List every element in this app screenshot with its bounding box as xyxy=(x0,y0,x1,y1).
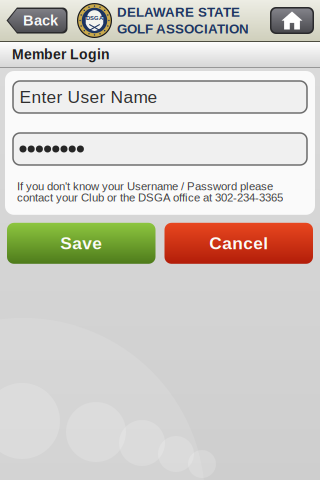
staticText: Cancel xyxy=(209,234,268,253)
staticText: Member Login xyxy=(12,47,110,62)
staticText: DSGA xyxy=(86,15,103,21)
staticText: contact your Club or the DSGA office at … xyxy=(17,191,283,204)
staticText: If you don't know your Username / Passwo… xyxy=(17,180,273,193)
staticText: Save xyxy=(60,234,102,253)
staticText: Back xyxy=(23,12,58,29)
button[interactable]: Cancel xyxy=(164,223,313,264)
staticText: DELAWARE STATE xyxy=(117,5,240,19)
staticText: Enter User Name xyxy=(19,87,157,107)
button[interactable]: Back xyxy=(6,7,68,34)
button[interactable]: Home xyxy=(270,7,314,34)
button[interactable]: Save xyxy=(7,223,155,264)
staticText: GOLF ASSOCIATION xyxy=(117,21,249,36)
